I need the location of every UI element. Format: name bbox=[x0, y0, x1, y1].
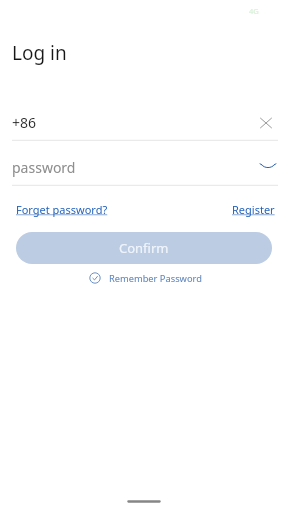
button[interactable]: Show password bbox=[256, 154, 280, 178]
staticText: Log in bbox=[12, 40, 67, 66]
staticText: +86 bbox=[12, 113, 37, 132]
staticText: Forget password? bbox=[16, 202, 108, 217]
staticText: 4G bbox=[249, 6, 259, 16]
button[interactable]: Clear phone number bbox=[254, 111, 278, 135]
button[interactable]: Confirm bbox=[16, 232, 272, 264]
staticText: Remember Password bbox=[109, 272, 202, 285]
staticText: Register bbox=[232, 202, 275, 217]
button[interactable]: Register bbox=[228, 198, 276, 220]
button[interactable]: Remember Password bbox=[86, 268, 206, 288]
staticText: password bbox=[12, 158, 76, 177]
button[interactable]: Forget password? bbox=[12, 198, 110, 220]
staticText: Confirm bbox=[119, 239, 169, 257]
